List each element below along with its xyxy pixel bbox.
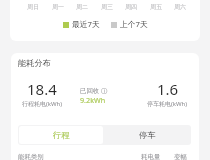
staticText: 1.6 (157, 79, 179, 99)
staticText: ⓘ (101, 87, 108, 95)
staticText: 周日 (27, 3, 39, 11)
staticText: 停车耗电(kWh) (147, 100, 188, 108)
button[interactable]: 停车 (104, 125, 191, 145)
staticText: 行程 (53, 130, 70, 140)
staticText: 停车 (139, 130, 156, 140)
staticText: 9.2kWh (80, 95, 106, 105)
button[interactable]: 行程 (19, 126, 103, 144)
staticText: 周二 (76, 3, 88, 11)
staticText: 行程耗电(kWh) (22, 100, 63, 108)
staticText: 周三 (101, 3, 113, 11)
staticText: 周四 (125, 3, 137, 11)
staticText: 周六 (174, 3, 186, 11)
staticText: 周五 (150, 3, 162, 11)
staticText: 耗电量 (141, 153, 161, 160)
staticText: 能耗类别 (18, 153, 44, 160)
staticText: 能耗分布 (18, 58, 51, 68)
staticText: 上个7天 (120, 19, 148, 30)
staticText: 变幅 (174, 153, 187, 160)
staticText: 18.4 (27, 79, 57, 99)
staticText: 周一 (52, 3, 64, 11)
staticText: 已回收 (80, 87, 100, 95)
staticText: 最近7天 (72, 19, 100, 30)
